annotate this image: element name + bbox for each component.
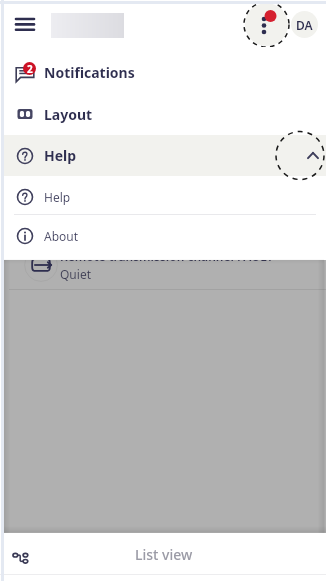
- staticText: DA: [296, 17, 313, 33]
- button[interactable]: Hierarchy view: [3, 538, 41, 576]
- button[interactable]: Remote transmission channel FAULT: [4, 244, 326, 285]
- staticText: Help: [44, 189, 71, 205]
- button[interactable]: Help: [3, 176, 326, 218]
- button[interactable]: Account: [291, 11, 318, 38]
- staticText: About: [44, 228, 79, 244]
- staticText: Quiet: [60, 266, 91, 282]
- button[interactable]: Layout: [3, 93, 326, 135]
- button[interactable]: Open navigation menu: [7, 6, 43, 42]
- staticText: Layout: [44, 105, 93, 124]
- button[interactable]: About: [3, 215, 326, 256]
- staticText: Notifications: [44, 63, 135, 82]
- staticText: Help: [44, 146, 77, 165]
- button[interactable]: More options: [243, 1, 290, 48]
- button[interactable]: 2: [3, 52, 326, 93]
- button[interactable]: Collapse Help: [275, 135, 325, 176]
- button[interactable]: List view: [130, 542, 198, 567]
- staticText: 2: [27, 62, 33, 75]
- staticText: List view: [135, 545, 193, 564]
- staticText: Remote transmission channel FAULT: [60, 248, 274, 264]
- button[interactable]: Help: [3, 135, 326, 176]
